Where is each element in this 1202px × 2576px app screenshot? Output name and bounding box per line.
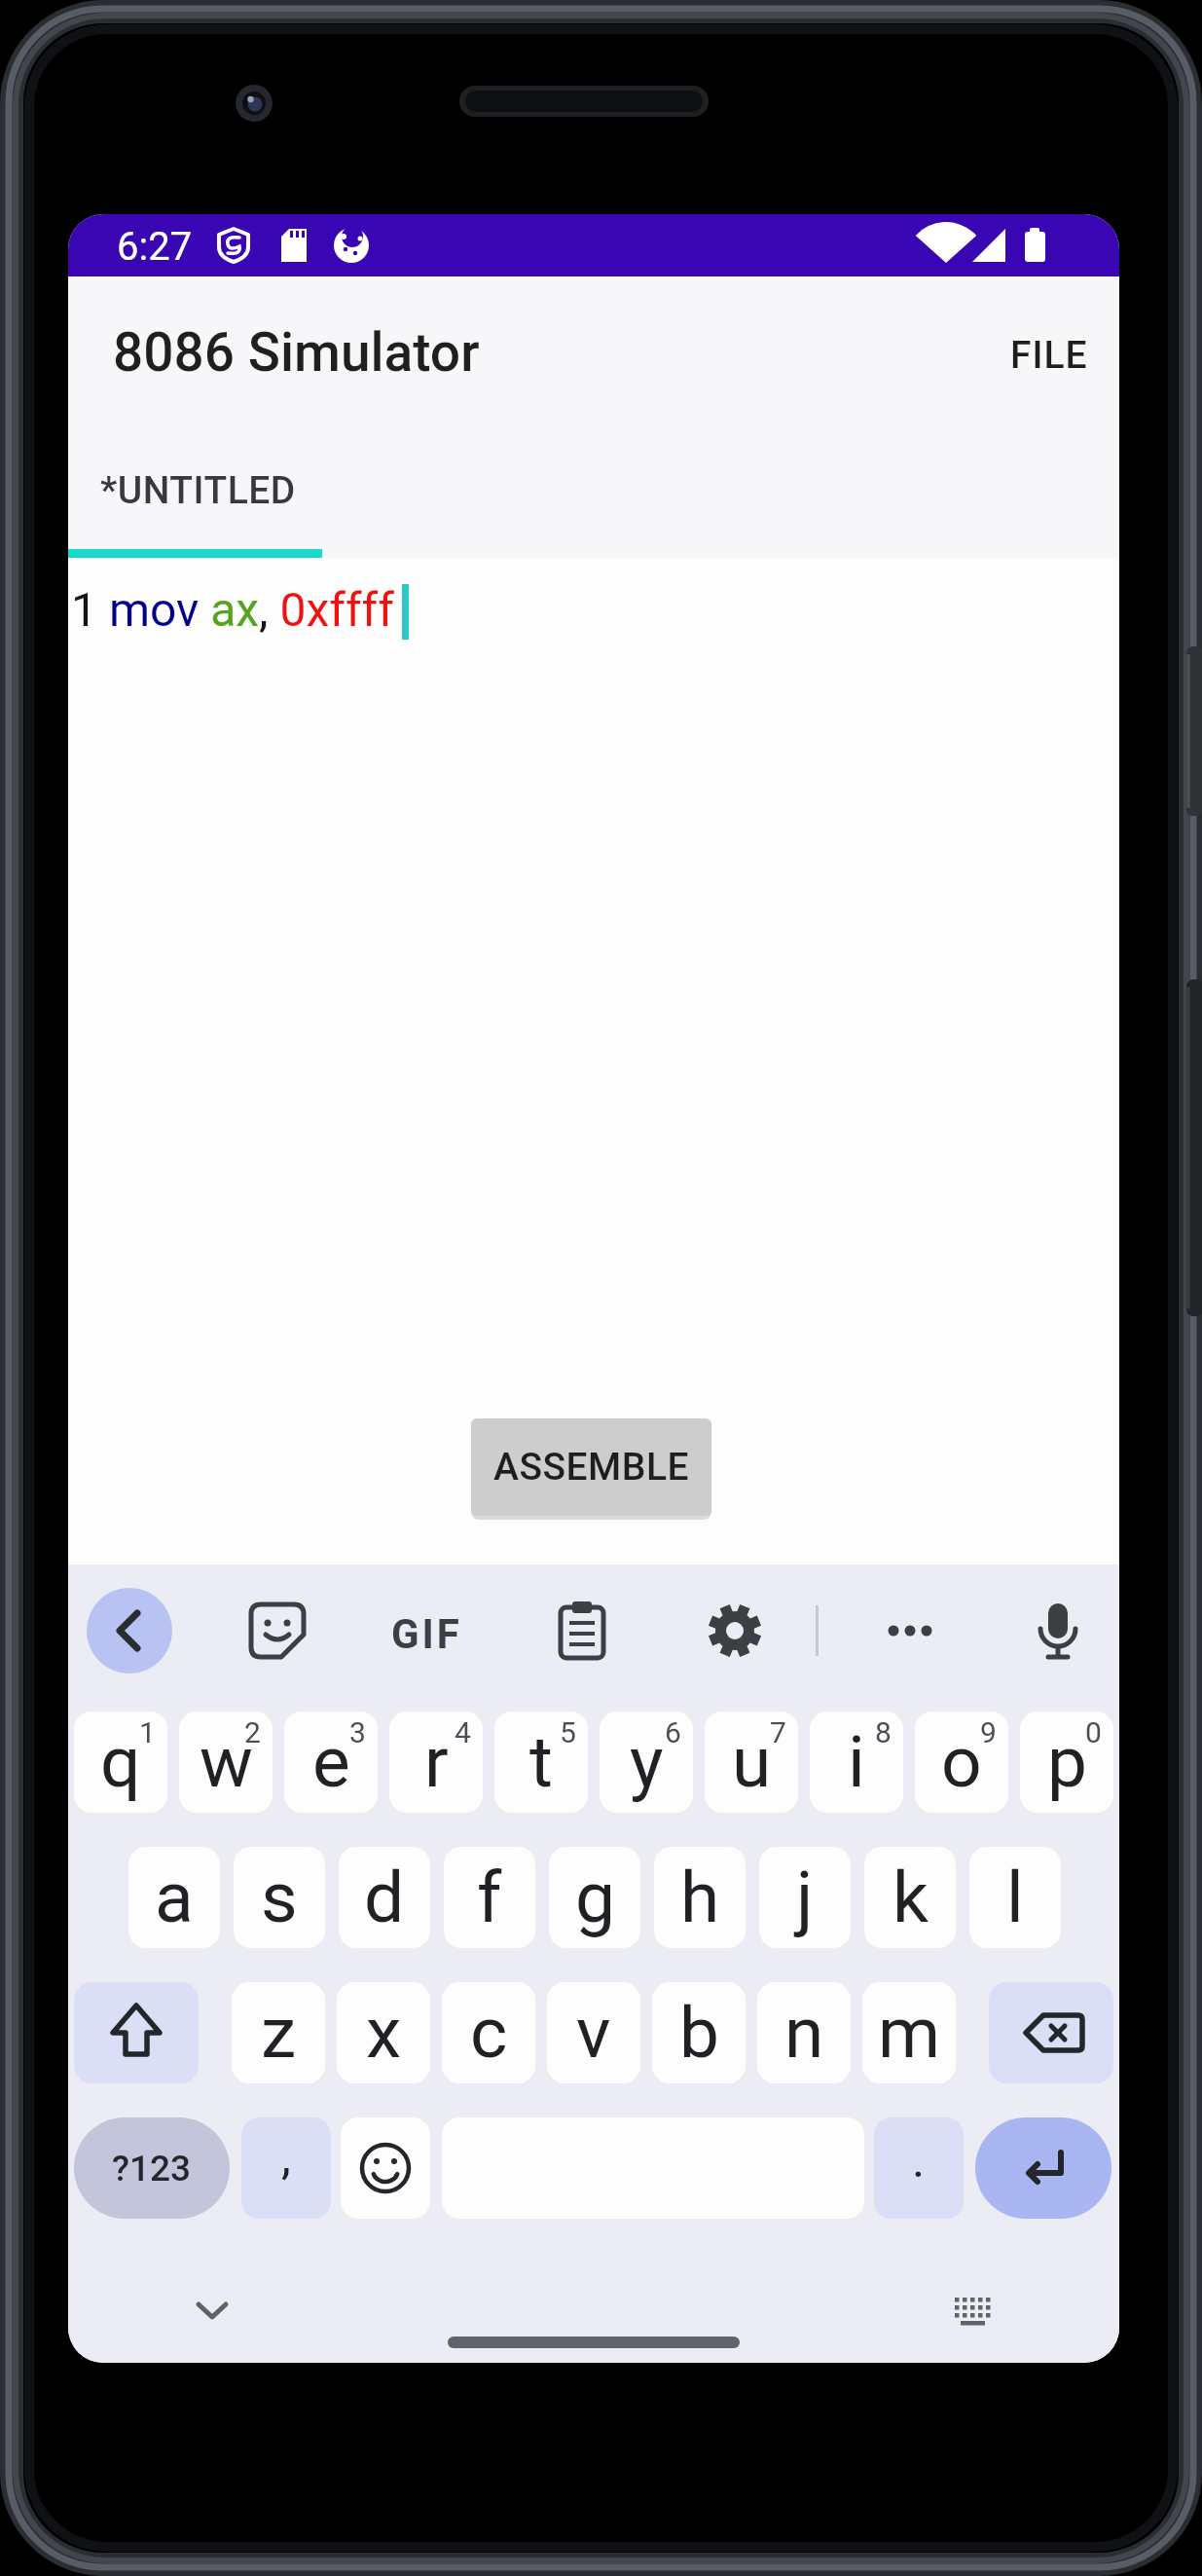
button[interactable]: m bbox=[862, 1982, 956, 2083]
staticText: l bbox=[1006, 1856, 1024, 1939]
staticText: o bbox=[941, 1720, 982, 1804]
staticText: 8086 Simulator bbox=[113, 321, 480, 384]
staticText: 9 bbox=[980, 1715, 997, 1749]
staticText: 5 bbox=[560, 1715, 576, 1749]
staticText: 3 bbox=[349, 1715, 366, 1749]
button[interactable] bbox=[1017, 1590, 1099, 1672]
staticText: q bbox=[100, 1720, 141, 1804]
button[interactable]: f bbox=[444, 1847, 535, 1948]
staticText: , bbox=[281, 2128, 291, 2186]
staticText: p bbox=[1047, 1720, 1087, 1804]
button[interactable]: , bbox=[241, 2117, 331, 2219]
button[interactable]: z bbox=[232, 1982, 325, 2083]
button[interactable]: a bbox=[128, 1847, 220, 1948]
staticText: *UNTITLED bbox=[100, 468, 296, 513]
staticText: z bbox=[261, 1991, 297, 2075]
button[interactable] bbox=[173, 2271, 251, 2349]
staticText: ASSEMBLE bbox=[493, 1445, 690, 1490]
staticText: 6:27 bbox=[117, 224, 193, 270]
button[interactable]: k bbox=[864, 1847, 956, 1948]
staticText: 8 bbox=[875, 1715, 892, 1749]
button[interactable]: l bbox=[969, 1847, 1061, 1948]
button[interactable]: h bbox=[654, 1847, 746, 1948]
button[interactable]: w bbox=[179, 1711, 273, 1813]
staticText: 2 bbox=[244, 1715, 261, 1749]
staticText: ?123 bbox=[112, 2148, 192, 2190]
staticText: e bbox=[312, 1720, 350, 1804]
staticText: s bbox=[261, 1856, 298, 1939]
staticText: 1 bbox=[139, 1715, 156, 1749]
button[interactable]: ?123 bbox=[74, 2117, 230, 2219]
button[interactable] bbox=[541, 1590, 623, 1672]
staticText: m bbox=[878, 1991, 941, 2075]
button[interactable]: j bbox=[759, 1847, 851, 1948]
button[interactable]: y bbox=[600, 1711, 693, 1813]
button[interactable] bbox=[74, 1982, 199, 2083]
button[interactable] bbox=[237, 1590, 318, 1672]
button[interactable]: FILE bbox=[1010, 333, 1088, 378]
staticText: a bbox=[155, 1856, 194, 1939]
button[interactable]: p bbox=[1020, 1711, 1113, 1813]
button[interactable] bbox=[68, 458, 323, 558]
staticText: v bbox=[576, 1991, 611, 2075]
staticText: 6 bbox=[665, 1715, 681, 1749]
staticText: 1 mov ax, 0xffff bbox=[71, 582, 394, 637]
staticText: y bbox=[630, 1720, 664, 1804]
button[interactable]: n bbox=[757, 1982, 851, 2083]
staticText: d bbox=[364, 1856, 405, 1939]
button[interactable]: t bbox=[494, 1711, 588, 1813]
button[interactable] bbox=[341, 2117, 430, 2219]
button[interactable]: g bbox=[549, 1847, 640, 1948]
staticText: j bbox=[796, 1856, 814, 1939]
staticText: u bbox=[732, 1720, 772, 1804]
button[interactable]: . bbox=[874, 2117, 964, 2219]
button[interactable]: o bbox=[915, 1711, 1008, 1813]
staticText: i bbox=[848, 1720, 865, 1804]
button[interactable]: b bbox=[652, 1982, 746, 2083]
button[interactable] bbox=[975, 2117, 1111, 2219]
button[interactable]: v bbox=[547, 1982, 640, 2083]
button[interactable] bbox=[869, 1590, 951, 1672]
button[interactable]: d bbox=[339, 1847, 430, 1948]
staticText: n bbox=[784, 1991, 824, 2075]
staticText: h bbox=[680, 1856, 720, 1939]
staticText: c bbox=[470, 1991, 508, 2075]
button[interactable] bbox=[932, 2271, 1010, 2349]
button[interactable] bbox=[694, 1590, 776, 1672]
staticText: f bbox=[477, 1856, 502, 1939]
button[interactable]: c bbox=[442, 1982, 535, 2083]
button[interactable]: ASSEMBLE bbox=[471, 1418, 711, 1516]
staticText: k bbox=[892, 1856, 929, 1939]
button[interactable] bbox=[989, 1982, 1113, 2083]
button[interactable]: x bbox=[337, 1982, 430, 2083]
staticText: x bbox=[366, 1991, 402, 2075]
staticText: . bbox=[912, 2132, 926, 2190]
staticText: w bbox=[200, 1720, 253, 1804]
button[interactable]: GIF bbox=[385, 1593, 467, 1674]
button[interactable]: q bbox=[74, 1711, 167, 1813]
button[interactable] bbox=[87, 1588, 172, 1674]
button[interactable]: s bbox=[234, 1847, 325, 1948]
button[interactable]: i bbox=[810, 1711, 903, 1813]
staticText: GIF bbox=[391, 1610, 462, 1658]
button[interactable]: e bbox=[284, 1711, 378, 1813]
staticText: b bbox=[679, 1991, 719, 2075]
staticText: 0 bbox=[1085, 1715, 1102, 1749]
staticText: 4 bbox=[455, 1715, 471, 1749]
button[interactable]: r bbox=[389, 1711, 483, 1813]
staticText: r bbox=[424, 1720, 449, 1804]
staticText: g bbox=[575, 1856, 615, 1939]
staticText: 7 bbox=[770, 1715, 786, 1749]
staticText: t bbox=[529, 1720, 553, 1804]
button[interactable]: u bbox=[705, 1711, 798, 1813]
